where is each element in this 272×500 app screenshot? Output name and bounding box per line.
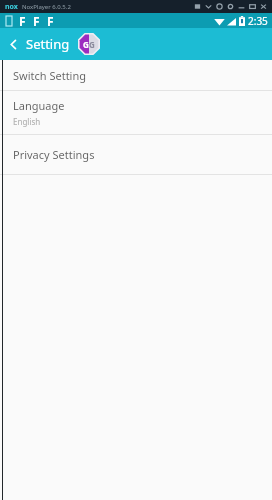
staticText: NoxPlayer 6.0.5.2: [22, 3, 71, 11]
staticText: Setting: [26, 35, 70, 53]
button[interactable]: Settings: [225, 1, 236, 12]
staticText: G: [83, 39, 89, 50]
button[interactable]: Switch Setting: [0, 60, 272, 90]
button[interactable]: More: [203, 1, 214, 12]
button[interactable]: Privacy Settings: [0, 135, 272, 174]
staticText: F: [19, 13, 26, 28]
button[interactable]: Close: [258, 1, 269, 12]
button[interactable]: Volume: [192, 1, 203, 12]
button[interactable]: App logo: [76, 31, 102, 57]
staticText: F: [47, 13, 54, 28]
staticText: Switch Setting: [13, 68, 87, 83]
staticText: Language: [13, 98, 65, 113]
button[interactable]: Minimize: [236, 1, 247, 12]
staticText: 2:35: [248, 14, 268, 28]
staticText: nox: [5, 2, 18, 12]
staticText: G: [89, 39, 95, 50]
button[interactable]: Rotate: [214, 1, 225, 12]
button[interactable]: Maximize: [247, 1, 258, 12]
staticText: F: [33, 13, 40, 28]
staticText: Privacy Settings: [13, 147, 95, 162]
button[interactable]: Back: [0, 31, 26, 57]
staticText: English: [13, 116, 41, 127]
button[interactable]: Language: [0, 91, 272, 134]
